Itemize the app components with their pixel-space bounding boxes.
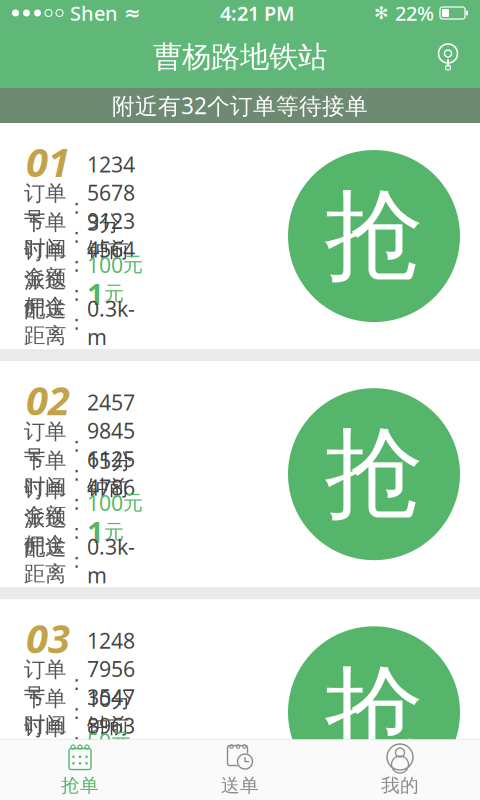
- staticText: 100: [87, 250, 123, 279]
- staticText: 22%: [395, 0, 434, 26]
- staticText: ：: [66, 519, 87, 545]
- staticText: 1: [87, 512, 104, 551]
- staticText: 2457984561254786: [87, 388, 135, 501]
- staticText: ：: [66, 757, 87, 783]
- staticText: 02: [26, 373, 70, 426]
- staticText: 1: [87, 274, 104, 313]
- staticText: 派送佣金: [24, 505, 66, 558]
- staticText: 抢: [324, 652, 423, 773]
- staticText: 送单: [221, 774, 259, 797]
- staticText: 附近有32个订单等待接单: [112, 90, 368, 120]
- staticText: 元: [123, 252, 143, 277]
- button[interactable]: 抢单: [0, 740, 160, 800]
- staticText: 配送距离: [24, 773, 66, 800]
- staticText: ≈: [124, 2, 141, 24]
- staticText: 10分钟前: [87, 685, 132, 739]
- staticText: 下单时间: [24, 686, 66, 738]
- staticText: ：: [66, 548, 87, 574]
- staticText: 派送佣金: [24, 267, 66, 320]
- staticText: 0.3km: [87, 532, 135, 589]
- button[interactable]: 抢: [288, 150, 460, 322]
- staticText: ：: [66, 432, 87, 458]
- staticText: 抢单: [61, 774, 99, 797]
- staticText: 1234567891234564: [87, 150, 135, 263]
- staticText: 订单号: [24, 657, 66, 709]
- staticText: 4:21 PM: [220, 0, 295, 26]
- staticText: ：: [66, 786, 87, 800]
- button[interactable]: 我的: [320, 740, 480, 800]
- staticText: 下单时间: [24, 447, 66, 500]
- staticText: 元: [104, 519, 124, 544]
- staticText: 1248795635478963: [87, 626, 135, 739]
- staticText: 3分钟前: [87, 208, 129, 263]
- staticText: 派送佣金: [24, 744, 66, 796]
- staticText: ：: [66, 222, 87, 249]
- staticText: ：: [66, 670, 87, 696]
- staticText: 曹杨路地铁站: [153, 39, 327, 75]
- button[interactable]: 抢: [288, 626, 460, 798]
- button[interactable]: 送单: [160, 740, 320, 800]
- button[interactable]: 当前位置: [426, 35, 470, 79]
- staticText: 元: [104, 281, 124, 306]
- staticText: 03: [26, 611, 70, 664]
- staticText: 50: [87, 727, 111, 755]
- staticText: ：: [66, 461, 87, 487]
- staticText: 元: [123, 490, 143, 515]
- staticText: ：: [66, 193, 87, 220]
- staticText: 配送距离: [24, 296, 66, 349]
- staticText: 0.3km: [87, 770, 135, 800]
- staticText: ：: [66, 699, 87, 725]
- staticText: ✻: [374, 3, 389, 23]
- staticText: 配送距离: [24, 534, 66, 587]
- staticText: 订单金额: [24, 715, 66, 767]
- staticText: 下单时间: [24, 209, 66, 262]
- button[interactable]: 抢: [288, 388, 460, 560]
- staticText: ：: [66, 309, 87, 336]
- staticText: 0.3km: [87, 294, 135, 351]
- staticText: 元: [111, 729, 131, 753]
- staticText: 01: [26, 135, 70, 188]
- staticText: ：: [66, 490, 87, 516]
- staticText: 订单金额: [24, 476, 66, 529]
- staticText: 订单金额: [24, 238, 66, 291]
- staticText: ：: [66, 251, 87, 278]
- staticText: Shen: [70, 0, 118, 26]
- staticText: 0.5: [87, 731, 112, 800]
- staticText: 100: [87, 489, 123, 517]
- staticText: 订单号: [24, 180, 66, 233]
- staticText: 抢: [324, 175, 423, 297]
- staticText: 订单号: [24, 418, 66, 471]
- staticText: 我的: [381, 774, 419, 797]
- staticText: 15分钟前: [87, 446, 132, 501]
- staticText: 抢: [324, 414, 423, 535]
- staticText: ：: [66, 280, 87, 307]
- staticText: ：: [66, 728, 87, 754]
